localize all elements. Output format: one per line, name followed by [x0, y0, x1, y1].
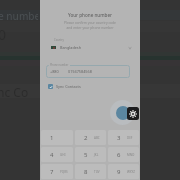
staticText: 6: [117, 151, 121, 159]
button[interactable]: 3: [108, 130, 139, 145]
staticText: Country: [54, 38, 64, 42]
button[interactable]: [46, 65, 130, 78]
button[interactable]: Continue: [116, 106, 130, 120]
button[interactable]: 5: [75, 147, 106, 162]
staticText: +880: [50, 69, 59, 74]
staticText: 1: [50, 134, 54, 142]
staticText: Phone number: [50, 63, 69, 67]
staticText: 5: [84, 151, 88, 159]
staticText: JKL: [94, 153, 99, 157]
button[interactable]: 1: [41, 130, 73, 145]
staticText: 9: [117, 168, 121, 176]
button[interactable]: Bangladesh: [40, 43, 140, 52]
button[interactable]: 7: [41, 164, 73, 179]
button[interactable]: Sync Contacts: [40, 82, 140, 91]
staticText: MNO: [127, 153, 135, 157]
staticText: Bangladesh: [60, 45, 82, 50]
staticText: ABC: [94, 136, 100, 140]
button[interactable]: Settings: [127, 107, 139, 120]
staticText: 2: [84, 134, 88, 142]
staticText: TUV: [94, 170, 100, 174]
staticText: 01947584568: [68, 69, 92, 74]
staticText: Sync Contacts: [56, 84, 81, 89]
staticText: GHI: [60, 153, 66, 157]
staticText: 4: [50, 151, 54, 159]
staticText: PQRS: [60, 170, 68, 174]
staticText: Please confirm your country code and ent…: [40, 20, 140, 30]
staticText: 3: [117, 134, 121, 142]
staticText: e numbe: [0, 9, 38, 23]
button[interactable]: 4: [41, 147, 73, 162]
button[interactable]: 8: [75, 164, 106, 179]
staticText: DEF: [127, 136, 133, 140]
button[interactable]: 6: [108, 147, 139, 162]
button[interactable]: 2: [75, 130, 106, 145]
staticText: WXYZ: [127, 170, 135, 174]
staticText: 7: [50, 168, 54, 176]
staticText: 8: [84, 168, 88, 176]
staticText: Your phone number: [40, 12, 140, 18]
button[interactable]: 9: [108, 164, 139, 179]
